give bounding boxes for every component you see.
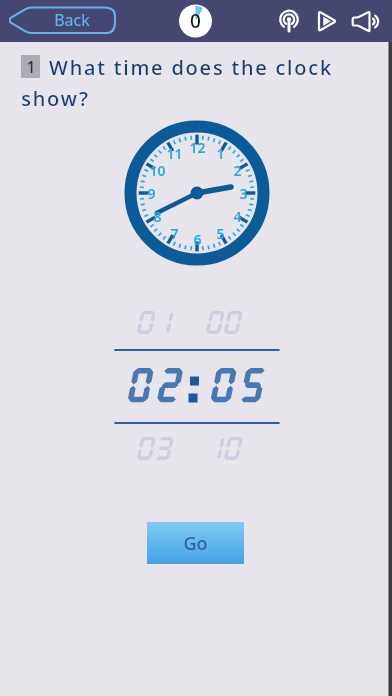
- button[interactable]: Back: [7, 7, 115, 33]
- staticText: Back: [54, 9, 90, 31]
- button[interactable]: [316, 8, 340, 34]
- staticText: 3: [239, 184, 248, 202]
- staticText: 9: [147, 184, 156, 202]
- staticText: 10: [149, 161, 166, 179]
- staticText: 6: [193, 230, 202, 248]
- staticText: 8: [153, 207, 162, 225]
- staticText: 12: [189, 138, 206, 156]
- staticText: 7: [170, 224, 179, 242]
- staticText: 1: [26, 56, 36, 78]
- button[interactable]: [278, 8, 300, 33]
- staticText: 2: [233, 161, 242, 179]
- staticText: 1: [216, 144, 225, 162]
- staticText: 5: [216, 224, 225, 242]
- staticText: 11: [166, 144, 183, 162]
- staticText: show?: [21, 85, 90, 111]
- staticText: 0: [190, 8, 201, 34]
- staticText: What time does the clock: [49, 54, 333, 80]
- staticText: 4: [233, 207, 242, 225]
- staticText: Go: [183, 531, 208, 556]
- button[interactable]: Go: [147, 522, 244, 564]
- button[interactable]: [350, 8, 380, 34]
